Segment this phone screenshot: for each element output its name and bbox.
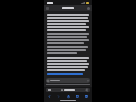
button[interactable]: Menu — [46, 7, 49, 10]
button[interactable]: Back — [47, 94, 52, 99]
button[interactable]: Attach — [46, 78, 90, 83]
button[interactable]: Reload — [86, 89, 88, 91]
button[interactable]: Share — [66, 94, 71, 99]
button[interactable]: Account — [87, 7, 90, 10]
other: Voice — [87, 80, 89, 82]
button[interactable]: Tabs — [84, 94, 89, 99]
button[interactable]: Forward — [56, 94, 61, 99]
button[interactable]: Reload — [46, 88, 90, 92]
button[interactable]: Bookmarks — [75, 94, 80, 99]
